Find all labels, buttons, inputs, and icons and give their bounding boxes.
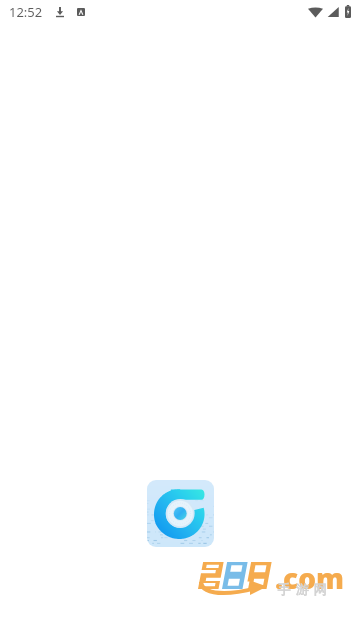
staticText: 手游网 [275, 581, 329, 597]
staticText: .com [275, 559, 345, 597]
staticText: 12:52 [9, 3, 43, 21]
